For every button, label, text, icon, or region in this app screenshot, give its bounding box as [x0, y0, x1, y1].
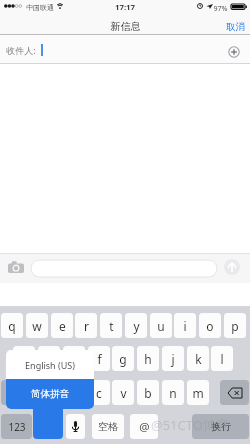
- button[interactable]: Shift: [1, 380, 30, 405]
- staticText: f: [97, 351, 102, 367]
- button[interactable]: w: [26, 313, 48, 338]
- button[interactable]: o: [199, 313, 221, 338]
- button[interactable]: f: [88, 346, 110, 371]
- staticText: 中国联通: [26, 3, 54, 12]
- staticText: v: [120, 385, 127, 401]
- button[interactable]: d: [63, 346, 85, 371]
- button[interactable]: y: [125, 313, 147, 338]
- button[interactable]: n: [162, 380, 184, 405]
- button[interactable]: z: [38, 380, 60, 405]
- staticText: n: [169, 385, 177, 401]
- button[interactable]: Microphone: [66, 414, 85, 439]
- staticText: j: [171, 351, 175, 367]
- staticText: y: [133, 318, 140, 334]
- button[interactable]: m: [187, 380, 209, 405]
- staticText: h: [144, 351, 152, 367]
- button[interactable]: q: [1, 313, 23, 338]
- staticText: d: [70, 351, 78, 367]
- button[interactable]: b: [137, 380, 159, 405]
- button[interactable]: x: [63, 380, 85, 405]
- staticText: l: [220, 351, 224, 367]
- button[interactable]: l: [211, 346, 233, 371]
- staticText: c: [96, 385, 102, 401]
- button[interactable]: t: [100, 313, 122, 338]
- button[interactable]: English (US): [6, 350, 94, 379]
- staticText: q: [8, 318, 16, 334]
- staticText: b: [144, 385, 152, 401]
- button[interactable]: i: [174, 313, 196, 338]
- staticText: 空格: [98, 420, 118, 433]
- staticText: 收件人:: [6, 44, 36, 56]
- staticText: @51CTO博客: [151, 416, 229, 434]
- staticText: p: [231, 318, 239, 334]
- button[interactable]: 取消: [226, 21, 245, 33]
- button[interactable]: 换行: [192, 414, 249, 439]
- staticText: 换行: [211, 420, 231, 433]
- button[interactable]: e: [51, 313, 73, 338]
- staticText: English (US): [25, 359, 75, 371]
- staticText: w: [32, 318, 42, 334]
- staticText: r: [84, 318, 89, 334]
- staticText: t: [109, 318, 114, 334]
- button[interactable]: Add contact: [227, 45, 241, 59]
- button[interactable]: 简体拼音: [6, 379, 94, 409]
- button[interactable]: u: [150, 313, 172, 338]
- staticText: @: [139, 419, 150, 435]
- button[interactable]: [31, 260, 217, 277]
- staticText: e: [59, 318, 66, 334]
- button[interactable]: 空格: [92, 414, 124, 439]
- button[interactable]: Camera: [8, 261, 24, 273]
- staticText: o: [206, 318, 214, 334]
- button[interactable]: c: [88, 380, 110, 405]
- button[interactable]: s: [38, 346, 60, 371]
- button[interactable]: a: [13, 346, 35, 371]
- button[interactable]: 123: [1, 414, 32, 439]
- staticText: z: [46, 385, 52, 401]
- button[interactable]: Send: [224, 259, 240, 275]
- button[interactable]: Backspace: [220, 380, 249, 405]
- staticText: m: [192, 385, 204, 401]
- staticText: a: [21, 351, 28, 367]
- staticText: k: [195, 351, 202, 367]
- staticText: 取消: [226, 21, 245, 33]
- button[interactable]: v: [112, 380, 134, 405]
- staticText: 97%: [213, 3, 228, 13]
- button[interactable]: @: [130, 414, 158, 439]
- staticText: 123: [8, 420, 26, 434]
- button[interactable]: j: [162, 346, 184, 371]
- button[interactable]: p: [224, 313, 246, 338]
- button[interactable]: h: [137, 346, 159, 371]
- button[interactable]: g: [112, 346, 134, 371]
- staticText: u: [157, 318, 165, 334]
- staticText: g: [119, 351, 127, 367]
- staticText: i: [183, 318, 187, 334]
- button[interactable]: r: [75, 313, 97, 338]
- button[interactable]: k: [187, 346, 209, 371]
- staticText: s: [46, 351, 52, 367]
- staticText: 新信息: [110, 20, 141, 33]
- staticText: 17:17: [0, 2, 250, 13]
- staticText: 简体拼音: [31, 388, 69, 400]
